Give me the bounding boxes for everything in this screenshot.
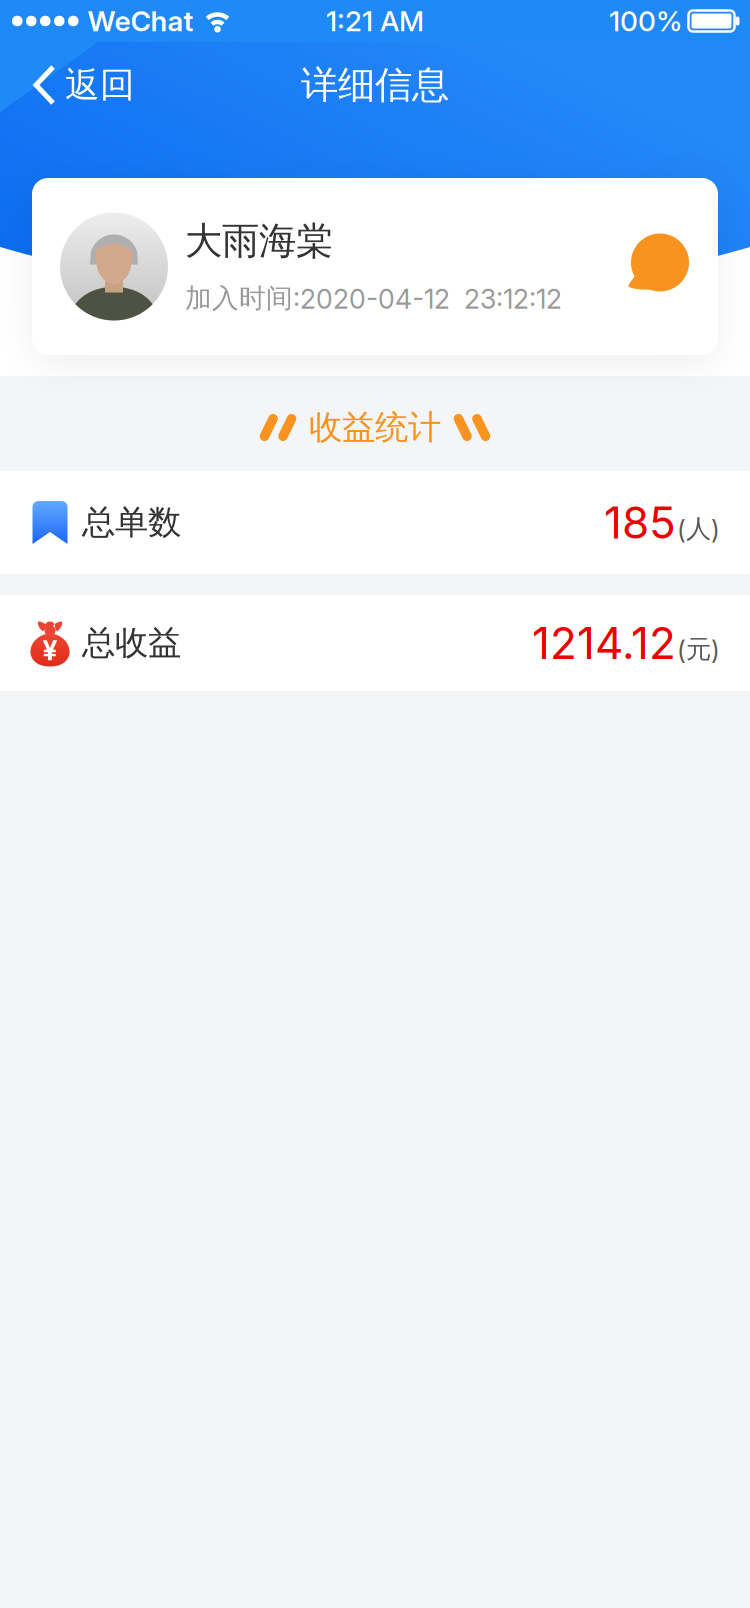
staticText: ¥ <box>42 635 57 666</box>
button[interactable]: ¥ <box>0 617 750 669</box>
staticText: 总单数 <box>82 502 181 543</box>
staticText: 1214.12 <box>532 617 676 669</box>
button[interactable]: 返回 <box>34 64 135 106</box>
button[interactable]: 大雨海棠 <box>32 178 718 355</box>
staticText: 加入时间:2020-04-12 23:12:12 <box>185 282 562 315</box>
staticText: 1:21 AM <box>326 4 424 37</box>
staticText: (人) <box>677 513 720 544</box>
button[interactable]: 总单数 <box>0 496 750 548</box>
staticText: 总收益 <box>82 622 181 663</box>
staticText: 详细信息 <box>301 62 449 108</box>
staticText: 返回 <box>65 64 135 106</box>
staticText: (元) <box>677 634 720 665</box>
staticText: 100% <box>609 4 683 37</box>
staticText: 大雨海棠 <box>185 218 333 264</box>
staticText: 收益统计 <box>309 407 441 448</box>
staticText: 185 <box>604 496 676 548</box>
staticText: WeChat <box>87 4 193 37</box>
